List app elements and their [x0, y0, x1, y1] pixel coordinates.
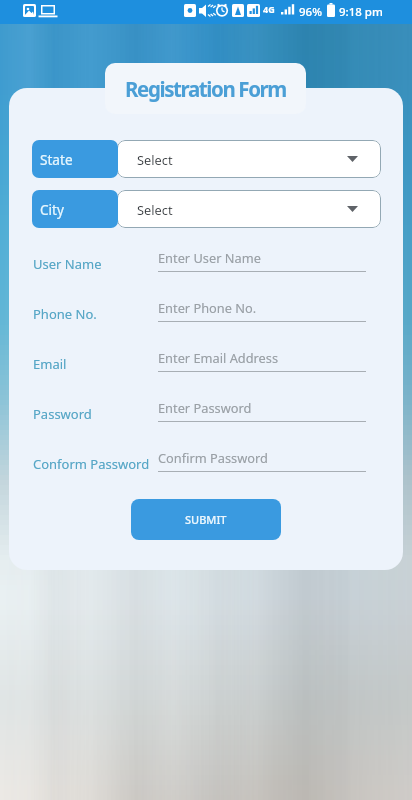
button[interactable]: Select	[117, 140, 381, 178]
staticText: Confirm Password	[158, 449, 268, 466]
staticText: Conform Password	[33, 455, 150, 473]
staticText: Select	[137, 201, 173, 218]
staticText: Enter Phone No.	[158, 299, 257, 316]
staticText: Password	[33, 405, 92, 423]
button[interactable]: Enter Phone No.	[158, 295, 366, 321]
staticText: 9:18 pm	[339, 4, 383, 20]
button[interactable]: Enter Password	[158, 395, 366, 421]
button[interactable]: Registration Form	[105, 63, 306, 114]
staticText: Registration Form	[125, 75, 286, 103]
staticText: SUBMIT	[185, 512, 227, 527]
staticText: Email	[33, 355, 67, 373]
staticText: 96%	[299, 4, 322, 20]
staticText: User Name	[33, 255, 102, 273]
staticText: Enter Password	[158, 399, 252, 416]
staticText: State	[40, 150, 73, 169]
button[interactable]: City	[32, 190, 118, 228]
button[interactable]: SUBMIT	[131, 499, 281, 540]
staticText: Enter User Name	[158, 249, 261, 266]
staticText: Phone No.	[33, 305, 97, 323]
staticText: City	[40, 200, 64, 219]
staticText: Enter Email Address	[158, 349, 279, 366]
button[interactable]: State	[32, 140, 118, 178]
button[interactable]: Enter Email Address	[158, 345, 366, 371]
button[interactable]: Enter User Name	[158, 245, 366, 271]
staticText: Select	[137, 151, 173, 168]
staticText: 4G	[263, 3, 275, 15]
button[interactable]: Select	[117, 190, 381, 228]
button[interactable]: Confirm Password	[158, 445, 366, 471]
